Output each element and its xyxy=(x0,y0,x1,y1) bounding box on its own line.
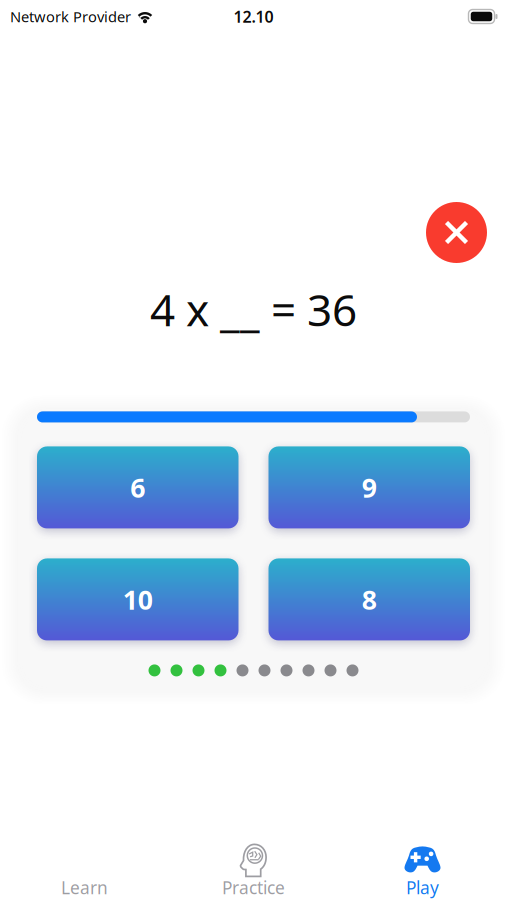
button[interactable]: 8 xyxy=(268,558,470,640)
staticText: Learn xyxy=(61,876,108,899)
button[interactable]: Practice xyxy=(169,823,338,900)
button[interactable]: 6 xyxy=(37,446,238,528)
staticText: 12.10 xyxy=(233,6,273,27)
staticText: 6 xyxy=(130,470,145,505)
staticText: Practice xyxy=(222,876,285,899)
button[interactable]: Close xyxy=(426,202,487,263)
staticText: Network Provider xyxy=(10,7,131,26)
staticText: 8 xyxy=(362,582,377,617)
staticText: Play xyxy=(406,876,439,899)
staticText: 10 xyxy=(123,582,153,617)
button[interactable]: 9 xyxy=(268,446,470,528)
staticText: 4 x __ = 36 xyxy=(150,280,357,338)
button[interactable]: Play xyxy=(338,823,507,900)
staticText: 9 xyxy=(362,470,377,505)
button[interactable]: 10 xyxy=(37,558,238,640)
button[interactable]: Learn xyxy=(0,823,169,900)
